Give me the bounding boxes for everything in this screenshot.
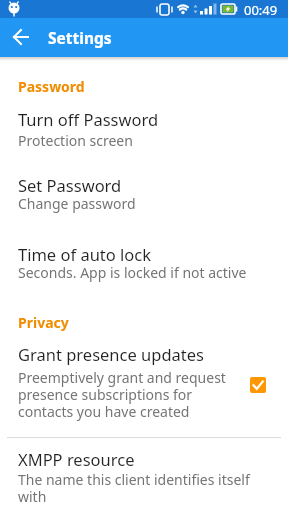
button[interactable] [7, 23, 35, 51]
staticText: Seconds. App is locked if not active [18, 263, 247, 282]
staticText: 00:49 [244, 1, 278, 19]
button[interactable]: Set Password [0, 164, 288, 230]
staticText: Grant presence updates [18, 343, 204, 365]
staticText: Protection screen [18, 131, 133, 150]
staticText: The name this client identifies itself w… [18, 470, 250, 506]
button[interactable]: Turn off Password [0, 96, 288, 162]
staticText: Settings [48, 27, 112, 48]
staticText: Change password [18, 194, 136, 213]
staticText: XMPP resource [18, 448, 135, 470]
staticText: Password [18, 77, 85, 96]
staticText: Set Password [18, 174, 122, 196]
staticText: Preemptively grant and request presence … [18, 368, 226, 421]
button[interactable]: Grant presence updates [0, 338, 288, 434]
button[interactable]: Time of auto lock [0, 232, 288, 296]
button[interactable]: XMPP resource [0, 440, 288, 512]
staticText: Time of auto lock [18, 243, 152, 265]
staticText: Turn off Password [18, 108, 159, 130]
button[interactable] [250, 377, 266, 393]
staticText: Privacy [18, 313, 69, 332]
